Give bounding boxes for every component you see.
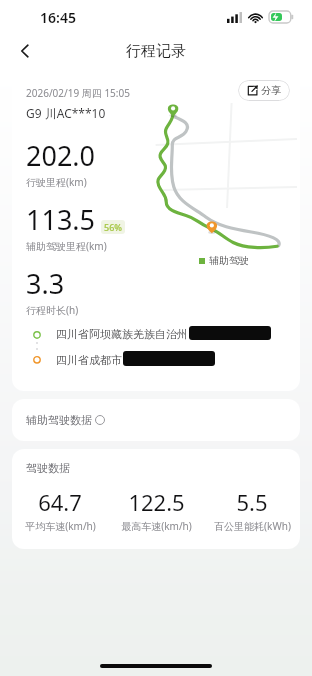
staticText: G9 川AC***10 bbox=[26, 105, 106, 121]
button[interactable]: 分享 bbox=[238, 80, 290, 101]
button[interactable]: 辅助驾驶数据 bbox=[12, 399, 300, 441]
staticText: 行程时长(h) bbox=[26, 303, 79, 317]
staticText: 百公里能耗(kWh) bbox=[214, 519, 291, 533]
staticText: 16:45 bbox=[40, 8, 76, 27]
staticText: 行驶里程(km) bbox=[26, 175, 87, 189]
staticText: 5.5 bbox=[236, 487, 268, 517]
staticText: 辅助驾驶 bbox=[209, 254, 249, 267]
staticText: 56% bbox=[104, 221, 122, 233]
staticText: 四川省成都市 bbox=[56, 353, 122, 367]
staticText: 2026/02/19 周四 15:05 bbox=[26, 86, 130, 100]
button[interactable]: Back bbox=[8, 34, 42, 68]
staticText: 驾驶数据 bbox=[26, 461, 70, 475]
staticText: 202.0 bbox=[26, 137, 96, 174]
staticText: 行程记录 bbox=[126, 42, 186, 61]
staticText: 113.5 bbox=[26, 201, 96, 238]
staticText: 辅助驾驶数据 bbox=[26, 413, 92, 427]
staticText: 分享 bbox=[261, 84, 281, 97]
staticText: 64.7 bbox=[38, 487, 82, 517]
staticText: 最高车速(km/h) bbox=[121, 519, 192, 533]
staticText: 四川省阿坝藏族羌族自治州 bbox=[56, 327, 188, 341]
staticText: 122.5 bbox=[128, 487, 185, 517]
staticText: 平均车速(km/h) bbox=[25, 519, 96, 533]
staticText: 3.3 bbox=[26, 265, 65, 302]
staticText: 辅助驾驶里程(km) bbox=[26, 239, 107, 253]
